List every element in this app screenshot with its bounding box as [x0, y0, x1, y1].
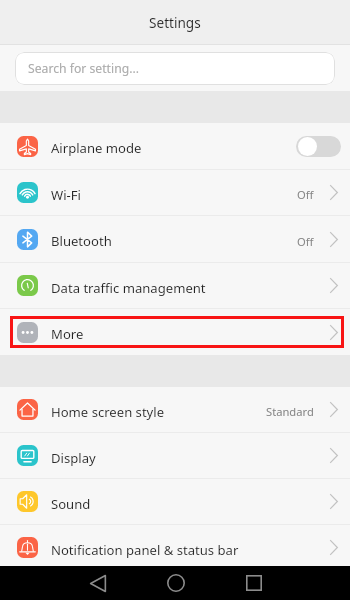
button[interactable]: Wi-Fi — [0, 170, 350, 216]
staticText: Wi-Fi — [51, 186, 81, 204]
button[interactable]: Airplane mode — [0, 123, 350, 170]
button[interactable]: Home screen style — [0, 387, 350, 433]
button[interactable]: Display — [0, 433, 350, 479]
button[interactable]: More — [0, 309, 350, 355]
staticText: Home screen style — [51, 403, 165, 421]
staticText: Bluetooth — [51, 232, 112, 250]
button[interactable]: Back — [76, 566, 120, 600]
staticText: Standard — [266, 404, 314, 419]
button[interactable]: Recent apps — [232, 566, 276, 600]
staticText: Sound — [51, 495, 91, 513]
staticText: Settings — [149, 13, 201, 32]
button[interactable]: Sound — [0, 479, 350, 525]
button[interactable]: Search for setting... — [15, 52, 335, 85]
button[interactable]: Airplane mode switch — [296, 136, 341, 157]
staticText: Search for setting... — [28, 60, 139, 77]
staticText: Data traffic management — [51, 279, 206, 297]
button[interactable]: Home — [154, 566, 198, 600]
button[interactable]: Bluetooth — [0, 216, 350, 263]
staticText: Display — [51, 449, 96, 467]
staticText: Notification panel & status bar — [51, 541, 239, 559]
button[interactable]: Notification panel & status bar — [0, 525, 350, 571]
staticText: More — [51, 325, 84, 343]
staticText: Off — [297, 234, 314, 249]
staticText: Airplane mode — [51, 139, 142, 157]
staticText: Off — [297, 187, 314, 202]
button[interactable]: Data traffic management — [0, 263, 350, 309]
